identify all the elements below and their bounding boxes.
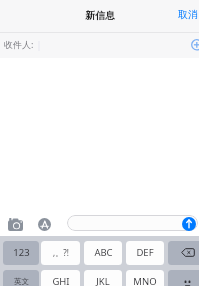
button[interactable]: MNO [126, 270, 164, 286]
button[interactable]: DEF [126, 241, 164, 265]
button[interactable]: GHI [41, 270, 80, 286]
staticText: ,。?! [53, 247, 69, 258]
staticText: 新信息 [85, 9, 115, 22]
staticText: GHI [52, 275, 70, 286]
button[interactable]: 收件人: [0, 33, 199, 58]
staticText: 123 [13, 246, 30, 259]
button[interactable]: 123 [3, 241, 39, 265]
button[interactable]: ,。?! [41, 241, 80, 265]
staticText: MNO [133, 275, 157, 286]
button[interactable]: Apps [38, 218, 51, 231]
button[interactable]: Add contact [191, 39, 199, 51]
staticText: JKL [96, 275, 110, 286]
staticText: DEF [136, 246, 154, 259]
button[interactable] [67, 215, 198, 231]
button[interactable]: Symbols [168, 270, 199, 286]
button[interactable]: ABC [84, 241, 122, 265]
button[interactable]: Backspace [168, 241, 199, 265]
button[interactable]: 英文 [3, 270, 39, 286]
button[interactable]: Camera [8, 218, 23, 231]
staticText: 收件人: [4, 38, 34, 50]
staticText: ABC [94, 246, 113, 259]
button[interactable]: 取消 [175, 3, 199, 26]
staticText: 英文 [14, 277, 29, 286]
button[interactable]: JKL [84, 270, 122, 286]
staticText: 取消 [178, 8, 198, 21]
button[interactable]: Send [182, 217, 196, 231]
